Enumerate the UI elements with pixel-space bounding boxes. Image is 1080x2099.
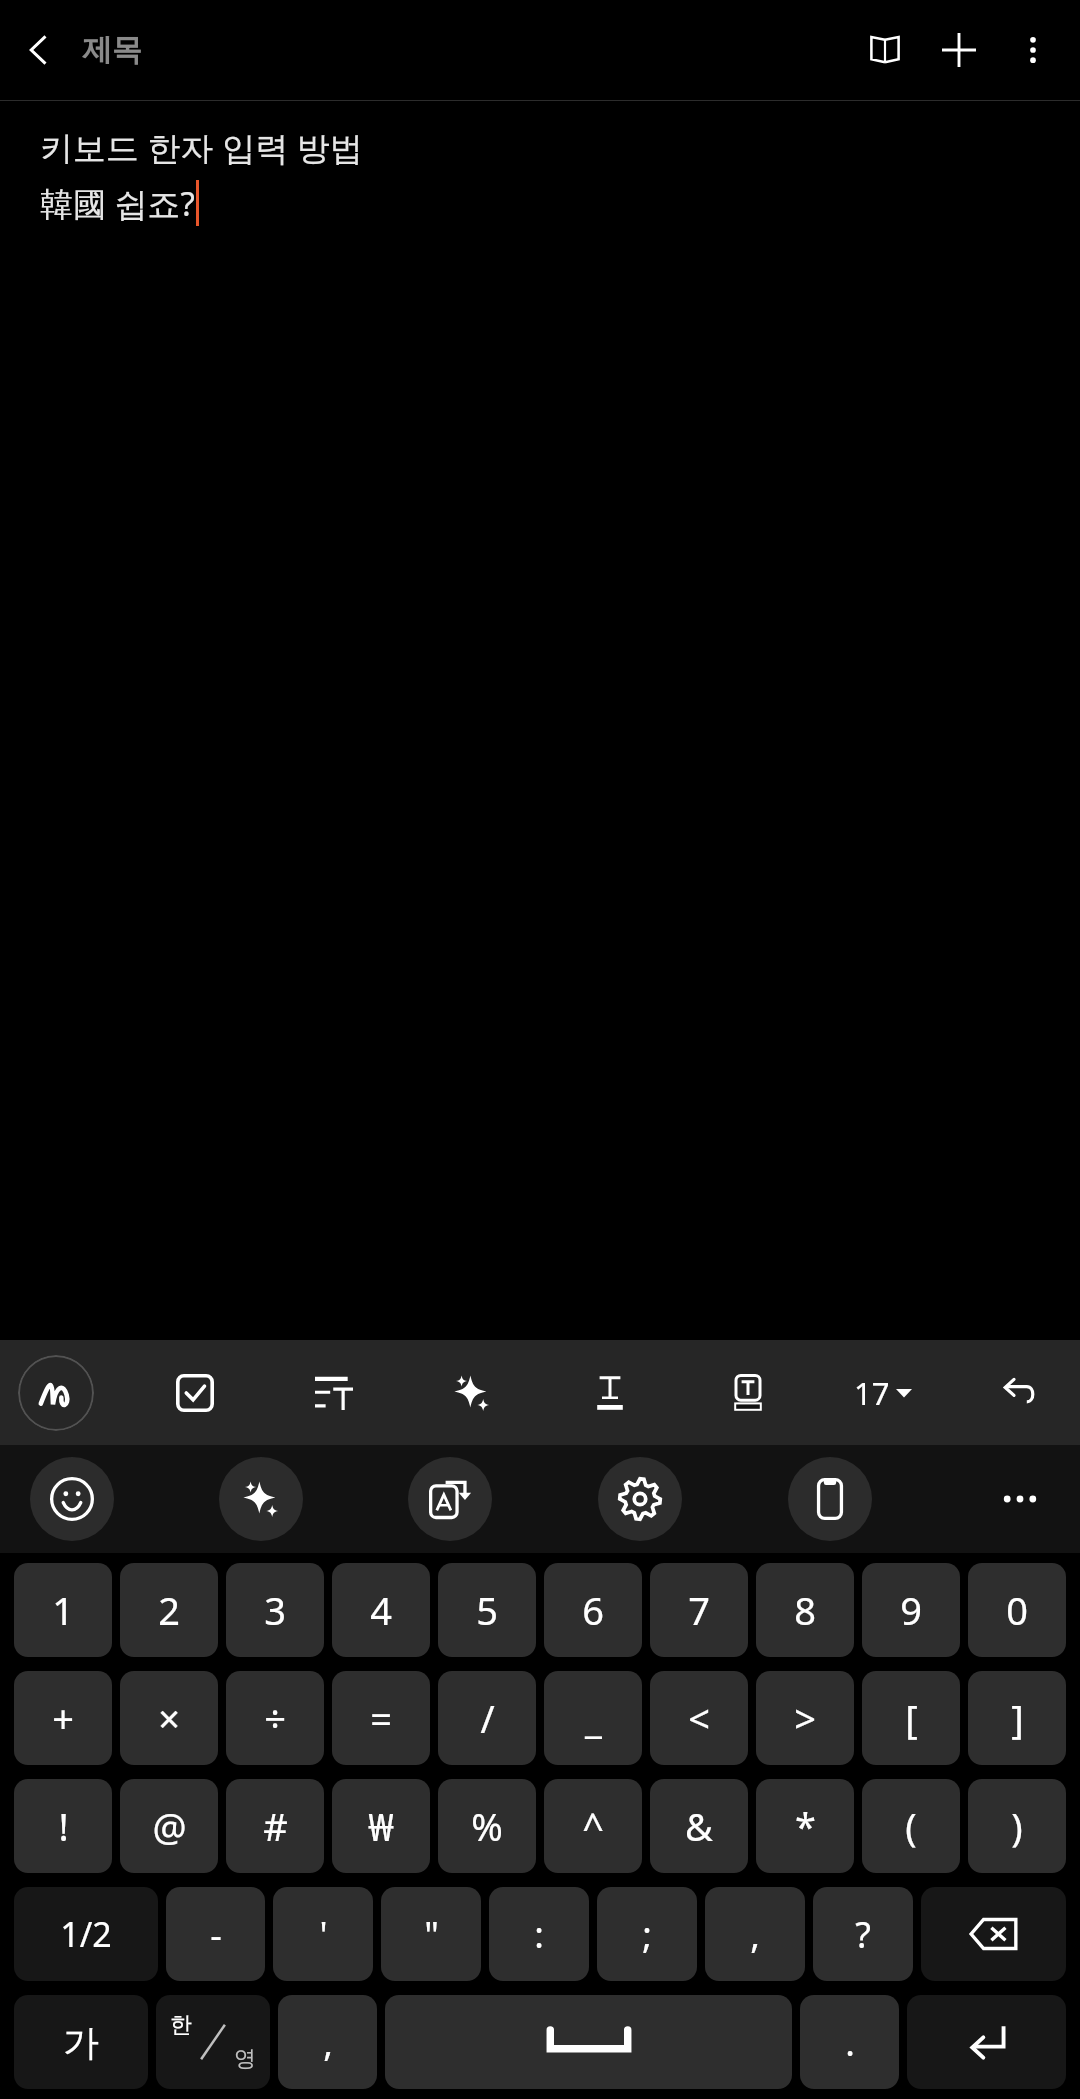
button[interactable]: del [921,1887,1066,1981]
button[interactable]: Reading mode [848,13,922,87]
button[interactable]: # [226,1779,324,1873]
button[interactable]: ^ [544,1779,642,1873]
button[interactable]: [ [862,1671,960,1765]
staticText: " [424,1910,439,1959]
button[interactable]: 0 [968,1563,1066,1657]
button[interactable]: - [166,1887,265,1981]
staticText: 9 [900,1584,922,1636]
button[interactable]: More options [996,13,1070,87]
staticText: ; [642,1910,652,1959]
staticText: ( [905,1800,917,1852]
staticText: : [534,1910,544,1959]
staticText: ? [855,1910,871,1959]
button[interactable]: 8 [756,1563,854,1657]
button[interactable]: Paragraph style [296,1355,372,1431]
button[interactable]: ? [813,1887,913,1981]
staticText: ) [1011,1800,1023,1852]
button[interactable]: % [438,1779,536,1873]
button[interactable]: Back [8,19,70,81]
button[interactable]: Translate [408,1457,492,1541]
button[interactable]: ! [14,1779,112,1873]
button[interactable]: 1/2 [14,1887,158,1981]
button[interactable]: hanyoung [156,1995,270,2089]
button[interactable]: 2 [120,1563,218,1657]
button[interactable]: _ [544,1671,642,1765]
button[interactable]: 17 [848,1364,918,1422]
button[interactable]: AI suggestions [219,1457,303,1541]
staticText: ' [319,1910,328,1959]
button[interactable]: 1 [14,1563,112,1657]
staticText: - [210,1910,222,1959]
staticText: ÷ [264,1692,286,1744]
button[interactable]: ÷ [226,1671,324,1765]
staticText: 한 [170,2011,192,2039]
staticText: , [750,1910,760,1959]
staticText: = [370,1692,392,1744]
staticText: × [158,1692,180,1744]
button[interactable]: ] [968,1671,1066,1765]
button[interactable]: Text color [572,1355,648,1431]
staticText: 5 [476,1584,498,1636]
button[interactable]: = [332,1671,430,1765]
staticText: ^ [582,1800,604,1852]
button[interactable]: : [489,1887,589,1981]
button[interactable]: / [438,1671,536,1765]
button[interactable]: Checklist [157,1355,233,1431]
button[interactable]: & [650,1779,748,1873]
button[interactable]: ) [968,1779,1066,1873]
staticText: [ [905,1692,918,1744]
button[interactable]: × [120,1671,218,1765]
button[interactable]: " [381,1887,481,1981]
button[interactable]: enter [907,1995,1066,2089]
button[interactable]: Highlight [710,1355,786,1431]
button[interactable]: Undo [980,1355,1056,1431]
button[interactable]: * [756,1779,854,1873]
staticText: 가 [63,2020,99,2065]
button[interactable]: > [756,1671,854,1765]
button[interactable]: 키보드 한자 입력 방법 [0,101,1080,1340]
button[interactable]: 7 [650,1563,748,1657]
staticText: . [845,2018,855,2067]
button[interactable]: Add [922,13,996,87]
button[interactable]: ( [862,1779,960,1873]
staticText: * [795,1800,816,1852]
button[interactable]: 3 [226,1563,324,1657]
staticText: > [794,1692,816,1744]
button[interactable]: More [978,1457,1062,1541]
staticText: 8 [794,1584,816,1636]
button[interactable]: 5 [438,1563,536,1657]
staticText: 제목 [82,31,142,69]
button[interactable]: + [14,1671,112,1765]
button[interactable]: space [385,1995,792,2089]
button[interactable]: , [705,1887,805,1981]
staticText: 1 [52,1584,74,1636]
button[interactable]: 가 [14,1995,148,2089]
button[interactable]: ₩ [332,1779,430,1873]
staticText: & [685,1800,713,1852]
staticText: 1/2 [60,1911,112,1957]
staticText: ₩ [368,1800,394,1852]
staticText: + [52,1692,74,1744]
button[interactable]: . [800,1995,899,2089]
button[interactable]: < [650,1671,748,1765]
staticText: 영 [234,2045,256,2073]
staticText: ] [1011,1692,1024,1744]
staticText: # [263,1800,288,1852]
staticText: 7 [688,1584,710,1636]
button[interactable]: ' [273,1887,373,1981]
staticText: 韓國 쉽죠? [40,181,195,226]
button[interactable]: ; [597,1887,697,1981]
staticText: 0 [1006,1584,1028,1636]
button[interactable]: 6 [544,1563,642,1657]
button[interactable]: 제목 [78,25,146,75]
button[interactable]: Handwriting [18,1355,94,1431]
button[interactable]: AI assist [434,1355,510,1431]
button[interactable]: 9 [862,1563,960,1657]
button[interactable]: 4 [332,1563,430,1657]
button[interactable]: Clipboard [788,1457,872,1541]
staticText: 3 [264,1584,286,1636]
button[interactable]: , [278,1995,377,2089]
button[interactable]: Keyboard settings [598,1457,682,1541]
button[interactable]: Emoji [30,1457,114,1541]
button[interactable]: @ [120,1779,218,1873]
